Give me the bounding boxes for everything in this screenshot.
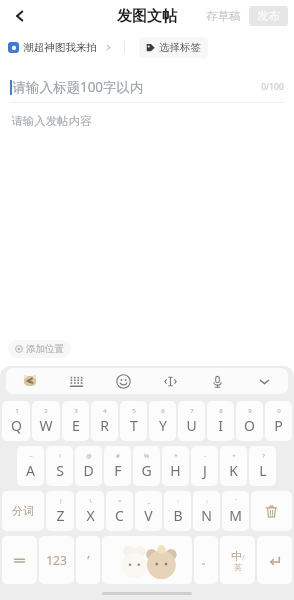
button[interactable]: 1 — [2, 401, 30, 441]
button[interactable]: 添加位置 — [8, 340, 71, 358]
button[interactable]: 5 — [120, 401, 147, 441]
staticText: L — [259, 461, 267, 480]
button[interactable]: ~ — [17, 446, 44, 486]
staticText: ’ — [87, 551, 90, 569]
button[interactable]: * — [162, 446, 189, 486]
staticText: F — [114, 461, 122, 480]
button[interactable]: + — [220, 446, 247, 486]
button[interactable]: 分词 — [2, 491, 44, 531]
button[interactable]: \ — [76, 491, 104, 531]
button[interactable]: # — [104, 446, 131, 486]
button[interactable]: 123 — [39, 536, 74, 584]
button[interactable]: Space — [102, 536, 192, 584]
staticText: T — [130, 416, 138, 435]
staticText: : — [177, 497, 179, 505]
button[interactable]: Emoji — [100, 368, 147, 394]
staticText: 选择标签 — [159, 41, 201, 54]
button[interactable]: @ — [75, 446, 102, 486]
button[interactable]: Enter — [257, 536, 292, 584]
button[interactable]: | — [46, 491, 74, 531]
staticText: 9 — [248, 407, 252, 415]
button[interactable]: Symbols — [2, 536, 37, 584]
button[interactable]: - — [191, 446, 218, 486]
button[interactable]: 请输入标题100字以内 — [10, 72, 284, 102]
button[interactable]: Text edit — [147, 368, 194, 394]
button[interactable]: Keyboard layout — [53, 368, 100, 394]
staticText: ; — [206, 497, 208, 505]
staticText: C — [115, 506, 124, 525]
staticText: J — [203, 461, 207, 480]
button[interactable]: ? — [249, 446, 276, 486]
staticText: Z — [56, 506, 65, 525]
staticText: 请输入标题100字以内 — [12, 78, 144, 96]
staticText: 8 — [219, 407, 223, 415]
staticText: M — [229, 506, 242, 525]
staticText: # — [116, 452, 120, 460]
staticText: D — [83, 461, 94, 480]
button[interactable]: ’ — [222, 491, 249, 531]
staticText: 潮超神图我来拍 — [23, 41, 97, 54]
staticText: 1 — [15, 407, 19, 415]
button[interactable]: Language — [220, 536, 255, 584]
button[interactable]: 存草稿 — [202, 5, 245, 27]
staticText: 发布 — [257, 9, 280, 23]
button[interactable]: 7 — [178, 401, 205, 441]
staticText: 7 — [190, 407, 194, 415]
button[interactable]: 潮超神图我来拍 — [8, 41, 112, 54]
staticText: 6 — [161, 407, 165, 415]
button[interactable]: 发布 — [249, 6, 288, 26]
staticText: | — [59, 497, 63, 505]
staticText: + — [232, 452, 236, 460]
staticText: A — [26, 461, 35, 480]
staticText: \ — [89, 497, 92, 505]
button[interactable]: % — [133, 446, 160, 486]
staticText: 4 — [103, 407, 107, 415]
button[interactable]: Period — [194, 536, 218, 584]
button[interactable]: 请输入发帖内容 — [0, 103, 294, 139]
staticText: _ — [147, 497, 150, 505]
staticText: 0 — [277, 407, 281, 415]
button[interactable]: Sogou — [6, 368, 53, 394]
staticText: / — [242, 553, 245, 563]
staticText: S — [56, 461, 64, 480]
staticText: * — [174, 452, 178, 460]
staticText: Q — [11, 416, 22, 435]
button[interactable]: : — [164, 491, 191, 531]
button[interactable]: 4 — [91, 401, 118, 441]
button[interactable]: 6 — [149, 401, 176, 441]
staticText: ! — [59, 452, 61, 460]
staticText: Y — [159, 416, 167, 435]
staticText: - — [204, 452, 206, 460]
staticText: 发图文帖 — [117, 7, 177, 26]
button[interactable]: Back — [6, 2, 34, 30]
button[interactable]: 3 — [62, 401, 89, 441]
staticText: W — [39, 416, 53, 435]
staticText: O — [244, 416, 255, 435]
staticText: @ — [86, 452, 92, 460]
button[interactable]: 0 — [265, 401, 292, 441]
staticText: ? — [262, 452, 265, 460]
button[interactable]: ; — [193, 491, 220, 531]
button[interactable]: = — [106, 491, 133, 531]
button[interactable]: 8 — [207, 401, 234, 441]
button[interactable]: Comma — [76, 536, 100, 584]
staticText: I — [218, 416, 223, 435]
staticText: K — [229, 461, 238, 480]
staticText: 英 — [234, 563, 242, 572]
button[interactable]: Voice input — [194, 368, 241, 394]
button[interactable]: Delete — [251, 491, 292, 531]
staticText: G — [141, 461, 152, 480]
button[interactable]: 2 — [32, 401, 60, 441]
staticText: = — [118, 497, 122, 505]
staticText: B — [173, 506, 183, 525]
button[interactable]: ! — [46, 446, 73, 486]
staticText: 请输入发帖内容 — [11, 114, 92, 128]
staticText: X — [86, 506, 95, 525]
button[interactable]: Hide keyboard — [241, 368, 288, 394]
staticText: 存草稿 — [206, 9, 241, 23]
staticText: 添加位置 — [26, 343, 64, 355]
button[interactable]: 9 — [236, 401, 263, 441]
button[interactable]: 选择标签 — [139, 37, 208, 58]
button[interactable]: _ — [135, 491, 162, 531]
staticText: 2 — [44, 407, 48, 415]
